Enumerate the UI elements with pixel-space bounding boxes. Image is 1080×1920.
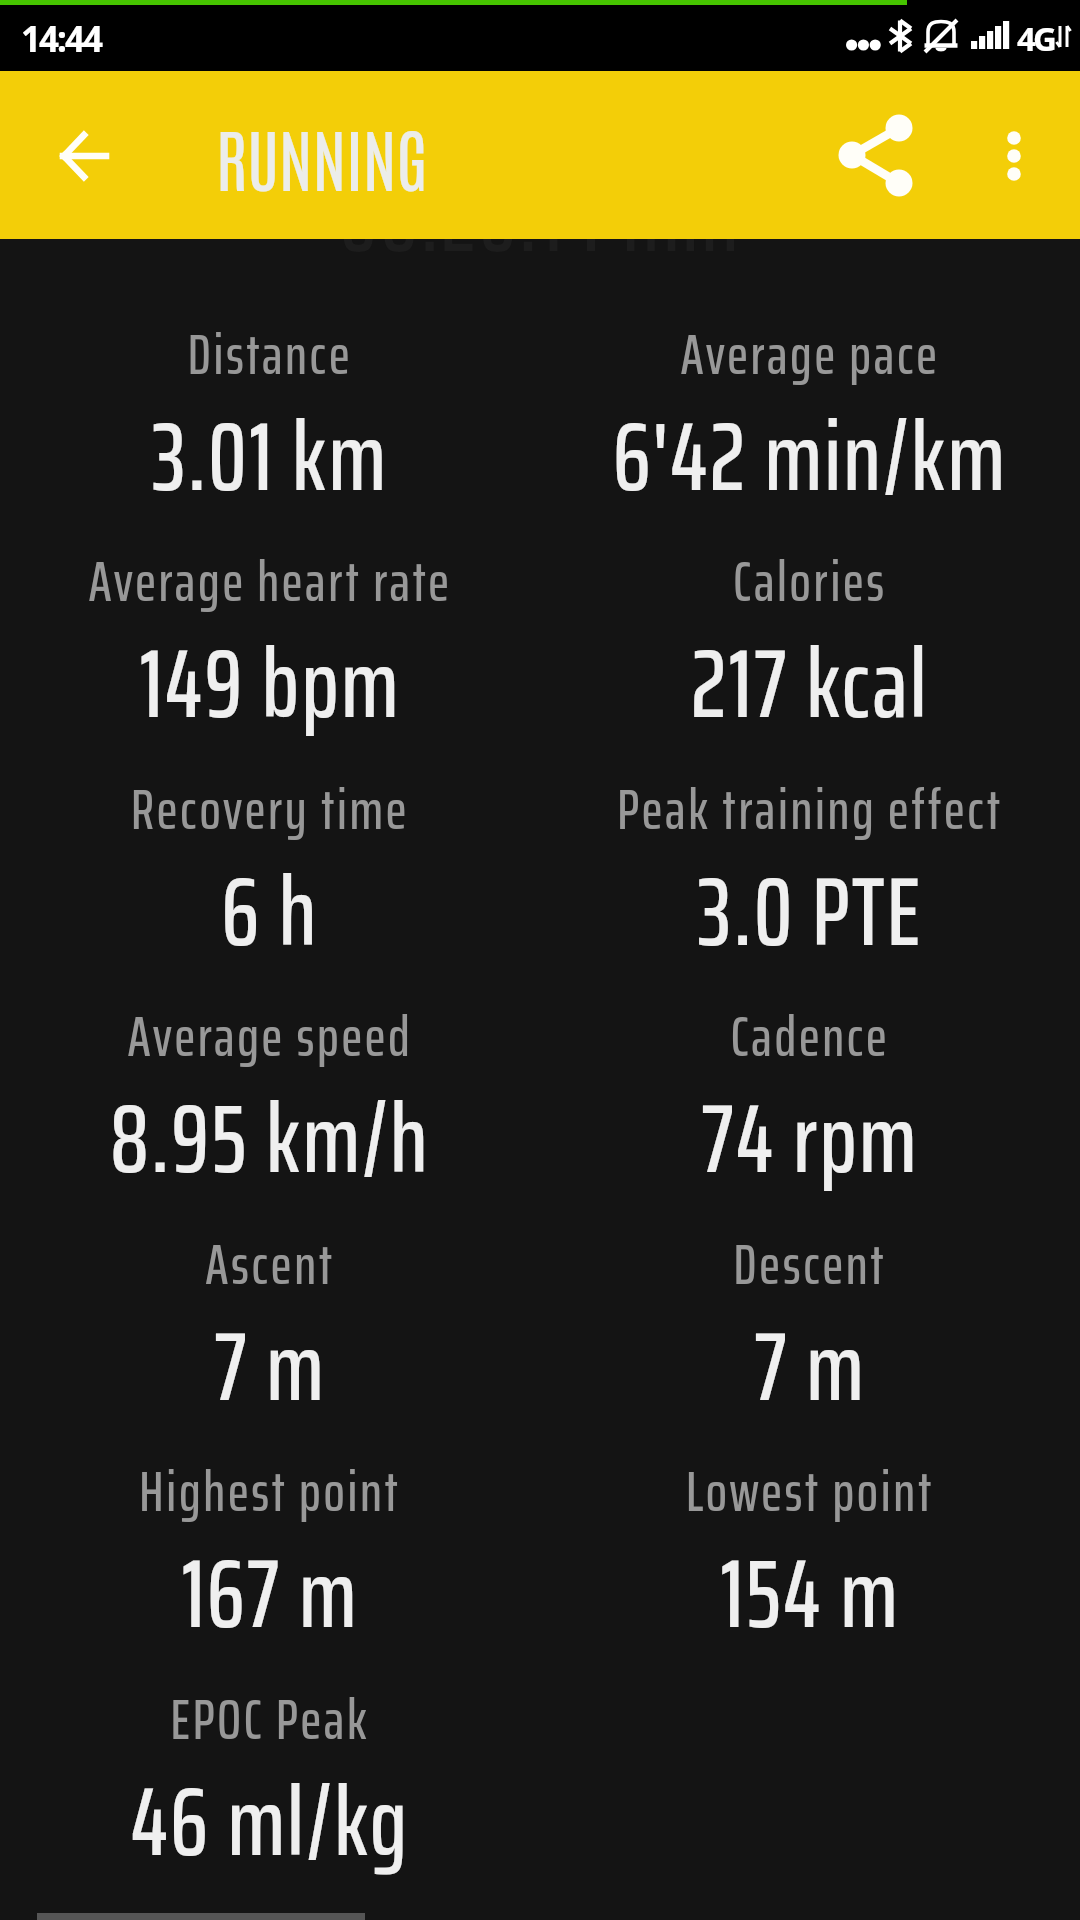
staticText: Recovery time	[0, 765, 550, 853]
staticText: Lowest point	[530, 1447, 1080, 1535]
staticText: EPOC Peak	[0, 1675, 550, 1763]
staticText: RUNNING	[216, 112, 428, 200]
staticText: 6 h	[0, 836, 550, 987]
staticText: 3.01 km	[0, 381, 550, 532]
staticText: Average speed	[0, 992, 550, 1080]
button[interactable]: More options	[966, 107, 1062, 203]
button[interactable]: Share	[828, 107, 924, 203]
staticText: Highest point	[0, 1447, 550, 1535]
staticText: 217 kcal	[530, 608, 1080, 759]
staticText: Peak training effect	[530, 765, 1080, 853]
staticText: 4G	[1017, 16, 1054, 61]
button[interactable]: Back	[36, 107, 132, 203]
staticText: 14:44	[21, 15, 101, 63]
staticText: Descent	[530, 1220, 1080, 1308]
staticText: 7 m	[530, 1291, 1080, 1442]
staticText: Cadence	[530, 992, 1080, 1080]
staticText: Calories	[530, 537, 1080, 625]
staticText: Ascent	[0, 1220, 550, 1308]
staticText: 3.0 PTE	[530, 836, 1080, 987]
staticText: 149 bpm	[0, 608, 550, 759]
staticText: 74 rpm	[530, 1063, 1080, 1214]
staticText: 6'42 min/km	[530, 381, 1080, 532]
staticText: Average pace	[530, 310, 1080, 398]
staticText: 8.95 km/h	[0, 1063, 550, 1214]
staticText: 46 ml/kg	[0, 1746, 550, 1897]
staticText: 167 m	[0, 1518, 550, 1669]
staticText: 154 m	[530, 1518, 1080, 1669]
staticText: Distance	[0, 310, 550, 398]
staticText: 7 m	[0, 1291, 550, 1442]
staticText: 00:20:14 min	[0, 142, 1080, 293]
staticText: Average heart rate	[0, 537, 550, 625]
